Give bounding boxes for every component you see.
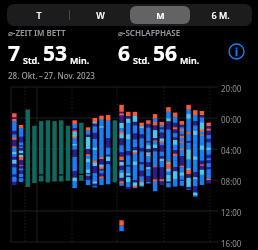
staticText: 04:00 xyxy=(221,145,242,156)
staticText: Std. xyxy=(23,54,40,66)
staticText: T xyxy=(36,9,42,21)
staticText: Min. xyxy=(180,54,200,66)
staticText: 56 xyxy=(153,39,178,68)
staticText: Std. xyxy=(133,54,150,66)
staticText: 00:00 xyxy=(221,114,242,125)
staticText: ⌀-SCHLAFPHASE xyxy=(118,27,181,38)
staticText: 53 xyxy=(43,39,68,68)
staticText: 16:00 xyxy=(221,238,242,249)
button[interactable]: 6 M. xyxy=(190,6,250,24)
button[interactable]: W xyxy=(70,6,130,24)
staticText: 28. Okt. – 27. Nov. 2023 xyxy=(8,70,95,81)
staticText: M xyxy=(156,9,165,21)
staticText: 6 M. xyxy=(211,9,230,21)
staticText: 7 xyxy=(8,39,21,68)
button[interactable]: T xyxy=(9,6,69,24)
staticText: Min. xyxy=(70,54,90,66)
staticText: W xyxy=(96,9,105,21)
button[interactable]: Info xyxy=(228,43,245,60)
staticText: 6 xyxy=(118,39,131,68)
staticText: 12:00 xyxy=(221,207,242,218)
staticText: ⌀-ZEIT IM BETT xyxy=(8,27,66,38)
staticText: 08:00 xyxy=(221,176,242,187)
staticText: 20:00 xyxy=(221,83,242,94)
button[interactable]: M xyxy=(130,6,190,24)
